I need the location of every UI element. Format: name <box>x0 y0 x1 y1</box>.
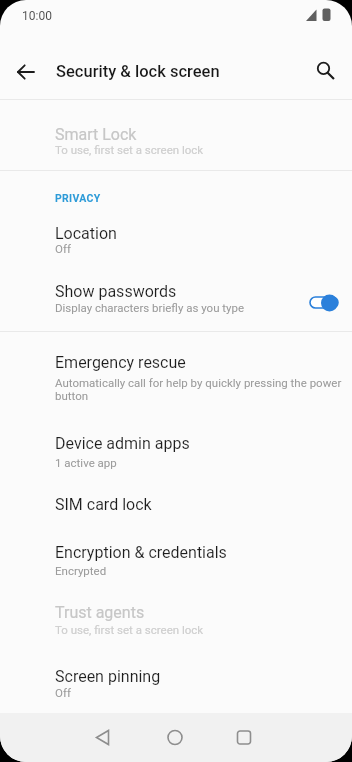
staticText: Show passwords <box>55 282 177 301</box>
staticText: Screen pinning <box>55 667 161 686</box>
staticText: PRIVACY <box>55 192 101 204</box>
staticText: Smart Lock <box>55 125 137 144</box>
button[interactable] <box>82 717 122 757</box>
button[interactable]: Show passwords <box>0 268 352 331</box>
staticText: Display characters briefly as you type <box>55 301 245 314</box>
button[interactable]: Device admin apps <box>0 420 352 482</box>
staticText: Encrypted <box>55 564 107 577</box>
button[interactable]: Smart Lock <box>0 100 352 170</box>
button[interactable]: Emergency rescue <box>0 332 352 420</box>
staticText: Security & lock screen <box>56 62 220 81</box>
staticText: Off <box>55 686 71 699</box>
button[interactable] <box>304 53 342 91</box>
button[interactable] <box>300 286 348 320</box>
button[interactable] <box>224 717 264 757</box>
button[interactable] <box>8 53 46 91</box>
staticText: Encryption & credentials <box>55 543 227 562</box>
staticText: Location <box>55 224 117 243</box>
button[interactable]: Location <box>0 212 352 268</box>
staticText: 1 active app <box>55 456 117 469</box>
button[interactable]: Screen pinning <box>0 652 352 713</box>
staticText: SIM card lock <box>55 495 152 514</box>
staticText: Device admin apps <box>55 434 190 453</box>
button[interactable] <box>155 717 195 757</box>
staticText: Emergency rescue <box>55 353 186 372</box>
staticText: Automatically call for help by quickly p… <box>55 376 342 402</box>
staticText: Off <box>55 242 71 255</box>
staticText: Trust agents <box>55 603 145 622</box>
staticText: To use, first set a screen lock <box>55 143 204 156</box>
button[interactable]: Trust agents <box>0 592 352 652</box>
button[interactable]: SIM card lock <box>0 482 352 528</box>
staticText: To use, first set a screen lock <box>55 623 204 636</box>
staticText: 10:00 <box>22 9 52 23</box>
button[interactable]: Encryption & credentials <box>0 528 352 592</box>
